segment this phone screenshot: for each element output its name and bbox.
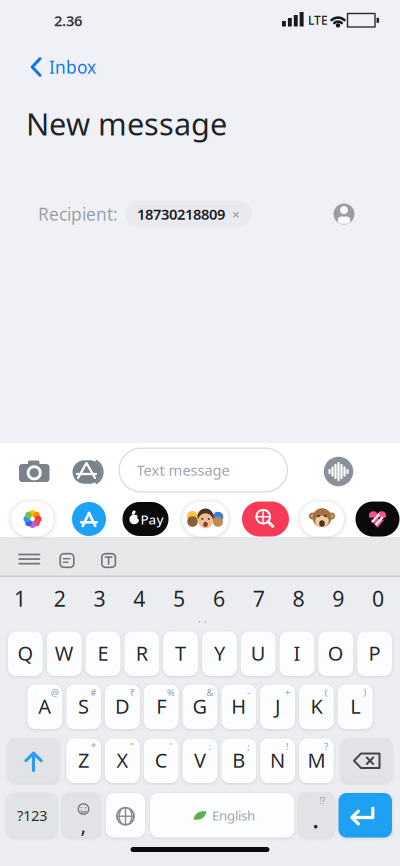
button[interactable]: Period bbox=[298, 793, 334, 837]
staticText: M bbox=[307, 747, 325, 773]
staticText: 18730218809 bbox=[137, 204, 225, 224]
button[interactable]: 8 bbox=[280, 579, 316, 617]
button[interactable]: R bbox=[124, 631, 159, 676]
button[interactable]: Fonts bbox=[101, 552, 117, 568]
button[interactable]: 5 bbox=[161, 579, 197, 617]
button[interactable]: V bbox=[183, 738, 217, 783]
staticText: ! bbox=[286, 740, 289, 752]
button[interactable]: 4 bbox=[121, 579, 157, 617]
button[interactable]: Photos bbox=[10, 501, 54, 537]
button[interactable]: P bbox=[357, 631, 392, 676]
staticText: G bbox=[192, 693, 207, 719]
button[interactable]: Apple Pay bbox=[121, 501, 169, 537]
staticText: Y bbox=[214, 640, 225, 666]
staticText: U bbox=[251, 640, 266, 666]
button[interactable]: 3 bbox=[82, 579, 118, 617]
staticText: . bbox=[312, 805, 318, 835]
staticText: New message bbox=[26, 103, 227, 144]
button[interactable]: Digital Touch bbox=[354, 501, 400, 537]
staticText: Recipient: bbox=[38, 202, 118, 225]
button[interactable]: 0 bbox=[360, 579, 396, 617]
button[interactable]: K bbox=[299, 684, 334, 729]
button[interactable]: J bbox=[260, 684, 295, 729]
button[interactable]: Text message bbox=[118, 447, 288, 492]
staticText: # bbox=[90, 686, 96, 698]
button[interactable]: N bbox=[260, 738, 295, 783]
button[interactable]: Shift bbox=[8, 738, 59, 783]
button[interactable]: G bbox=[183, 684, 217, 729]
button[interactable]: T bbox=[163, 631, 198, 676]
button[interactable]: Space bbox=[150, 793, 294, 837]
button[interactable]: Clipboard bbox=[59, 552, 75, 568]
button[interactable]: Q bbox=[8, 631, 43, 676]
button[interactable]: Delete bbox=[341, 738, 392, 783]
button[interactable]: Voice message bbox=[323, 456, 353, 486]
staticText: F bbox=[156, 693, 166, 719]
button[interactable]: F bbox=[144, 684, 179, 729]
staticText: ' bbox=[170, 740, 172, 752]
button[interactable]: 2 bbox=[42, 579, 78, 617]
button[interactable]: M bbox=[299, 738, 334, 783]
button[interactable]: I bbox=[280, 631, 314, 676]
staticText: - bbox=[247, 686, 250, 698]
staticText: !? bbox=[319, 796, 324, 806]
button[interactable]: U bbox=[241, 631, 276, 676]
staticText: C bbox=[155, 747, 168, 773]
button[interactable]: 1 bbox=[2, 579, 38, 617]
button[interactable]: X bbox=[105, 738, 140, 783]
staticText: , bbox=[80, 811, 86, 839]
button[interactable]: Apps bbox=[69, 458, 105, 486]
button[interactable]: D bbox=[105, 684, 140, 729]
staticText: 9 bbox=[332, 584, 344, 613]
staticText: 4 bbox=[133, 584, 145, 613]
staticText: W bbox=[55, 640, 74, 666]
button[interactable]: Images bbox=[241, 501, 289, 537]
button[interactable]: B bbox=[221, 738, 256, 783]
button[interactable]: Numbers bbox=[7, 793, 57, 837]
staticText: H bbox=[231, 693, 246, 719]
button[interactable]: C bbox=[144, 738, 179, 783]
button[interactable]: Memoji Stickers bbox=[181, 501, 229, 537]
button[interactable]: O bbox=[318, 631, 353, 676]
button[interactable]: 18730218809 bbox=[125, 201, 252, 227]
staticText: P bbox=[369, 640, 381, 666]
staticText: Inbox bbox=[49, 55, 96, 78]
button[interactable]: E bbox=[86, 631, 120, 676]
button[interactable]: Return bbox=[338, 793, 392, 837]
staticText: 6 bbox=[213, 584, 225, 613]
button[interactable]: A bbox=[27, 684, 62, 729]
staticText: English bbox=[212, 806, 255, 824]
button[interactable]: App Store bbox=[67, 501, 111, 537]
staticText: 7 bbox=[253, 584, 265, 613]
staticText: ₹ bbox=[130, 686, 135, 698]
button[interactable]: Inbox bbox=[30, 55, 96, 78]
button[interactable]: Camera bbox=[18, 459, 50, 485]
staticText: A bbox=[38, 693, 51, 719]
button[interactable]: Switch language bbox=[106, 793, 145, 837]
button[interactable]: S bbox=[66, 684, 101, 729]
button[interactable]: Z bbox=[66, 738, 101, 783]
button[interactable]: Comma bbox=[62, 793, 101, 837]
button[interactable]: L bbox=[338, 684, 373, 729]
staticText: N bbox=[270, 747, 285, 773]
staticText: * bbox=[91, 740, 96, 752]
staticText: % bbox=[167, 686, 175, 698]
button[interactable]: 6 bbox=[201, 579, 237, 617]
button[interactable]: Menu bbox=[18, 553, 40, 565]
button[interactable]: Animoji bbox=[299, 501, 345, 537]
staticText: B bbox=[232, 747, 245, 773]
staticText: " bbox=[130, 740, 134, 752]
staticText: R bbox=[136, 640, 148, 666]
staticText: 3 bbox=[94, 584, 106, 613]
button[interactable]: H bbox=[221, 684, 256, 729]
button[interactable]: Add contact bbox=[333, 203, 355, 225]
button[interactable]: 9 bbox=[320, 579, 356, 617]
staticText: Z bbox=[78, 747, 89, 773]
staticText: T bbox=[175, 640, 186, 666]
button[interactable]: Y bbox=[202, 631, 237, 676]
button[interactable]: W bbox=[47, 631, 82, 676]
staticText: ( bbox=[325, 686, 328, 698]
staticText: S bbox=[78, 693, 89, 719]
staticText: : bbox=[208, 740, 211, 752]
button[interactable]: 7 bbox=[241, 579, 277, 617]
